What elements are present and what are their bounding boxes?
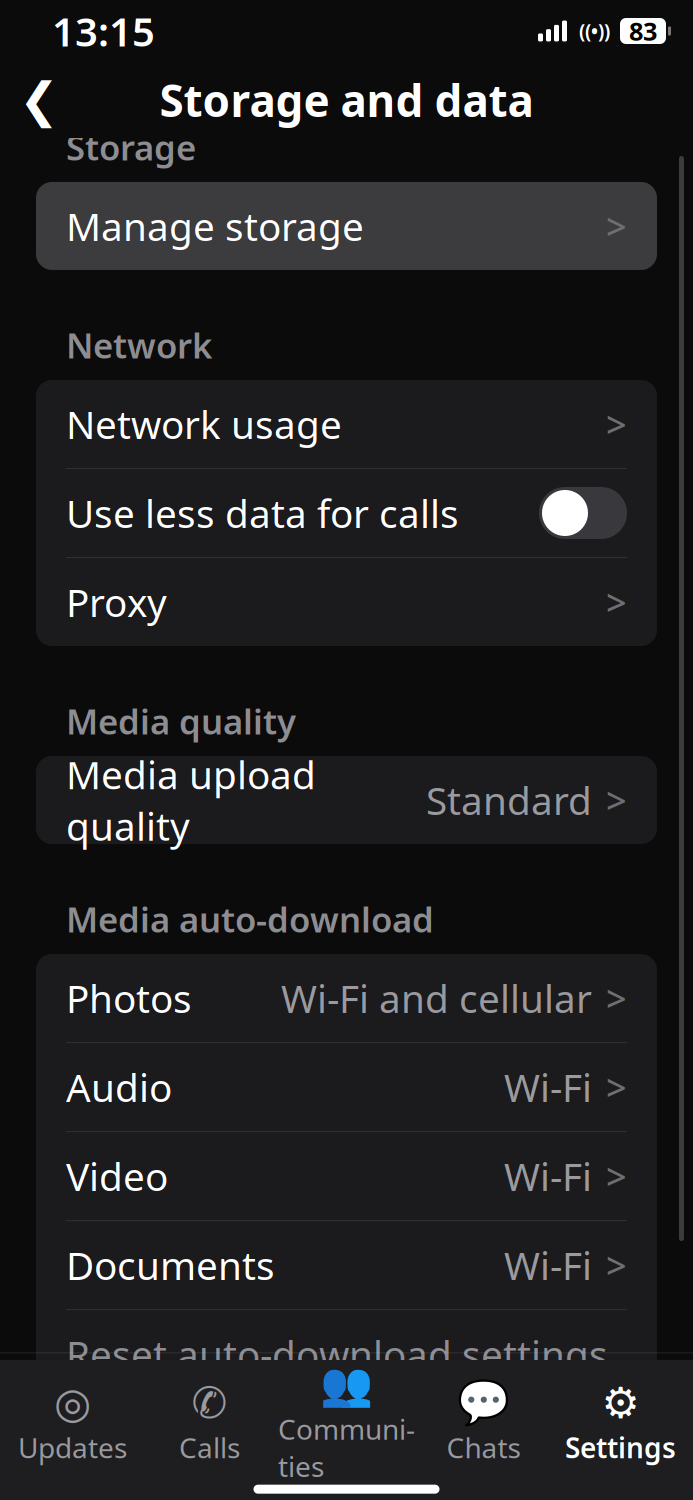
button[interactable]: 💬 — [415, 1372, 552, 1466]
staticText: Video — [66, 1150, 168, 1202]
button[interactable]: Back — [8, 69, 70, 131]
staticText: Wi-Fi — [504, 1061, 592, 1113]
button[interactable]: ◎ — [4, 1372, 141, 1466]
button[interactable]: ⚙ — [552, 1372, 689, 1466]
staticText: > — [606, 1063, 627, 1111]
staticText: Storage — [66, 124, 196, 170]
staticText: Reset auto-download settings — [66, 1328, 608, 1380]
staticText: Network usage — [66, 398, 342, 450]
button[interactable]: Documents — [36, 1221, 657, 1309]
button[interactable]: Audio — [36, 1043, 657, 1131]
staticText: Storage and data — [159, 71, 533, 129]
staticText: Audio — [66, 1061, 172, 1113]
staticText: Media auto-download — [66, 896, 434, 942]
staticText: > — [606, 400, 627, 448]
staticText: Use less data for calls — [66, 487, 459, 539]
staticText: 💬 — [457, 1378, 510, 1427]
staticText: Documents — [66, 1239, 275, 1291]
staticText: Settings — [565, 1429, 676, 1466]
staticText: Media quality — [66, 698, 296, 744]
staticText: Standard — [426, 774, 592, 826]
button[interactable]: Media upload quality — [36, 756, 657, 844]
staticText: Media upload quality — [66, 749, 316, 851]
staticText: > — [606, 578, 627, 626]
staticText: ❮ — [19, 73, 59, 127]
staticText: ◎ — [54, 1379, 91, 1427]
staticText: Wi-Fi and cellular — [281, 972, 592, 1024]
button[interactable]: Manage storage — [36, 182, 657, 270]
staticText: Manage storage — [66, 200, 364, 252]
staticText: Calls — [179, 1429, 240, 1466]
staticText: ((•)) — [579, 19, 610, 43]
staticText: > — [606, 1241, 627, 1289]
staticText: Updates — [18, 1429, 127, 1466]
staticText: > — [606, 1152, 627, 1200]
button[interactable]: Network usage — [36, 380, 657, 468]
staticText: ⚙ — [601, 1379, 639, 1427]
staticText: Chats — [446, 1429, 520, 1466]
staticText: Photos — [66, 972, 192, 1024]
button[interactable]: Proxy — [36, 558, 657, 646]
staticText: 83 — [629, 14, 657, 48]
button[interactable]: Use less data for calls — [36, 469, 657, 557]
staticText: 👥 — [320, 1360, 373, 1409]
staticText: > — [606, 202, 627, 250]
button[interactable]: 👥 — [278, 1353, 415, 1485]
staticText: > — [606, 974, 627, 1022]
staticText: Network — [66, 322, 212, 368]
staticText: ✆ — [191, 1379, 227, 1427]
staticText: Proxy — [66, 576, 167, 628]
button[interactable]: ✆ — [141, 1372, 278, 1466]
staticText: > — [606, 776, 627, 824]
staticText: Wi-Fi — [504, 1239, 592, 1291]
staticText: Wi-Fi — [504, 1150, 592, 1202]
staticText: Communities — [278, 1410, 415, 1485]
staticText: 13:15 — [52, 4, 155, 57]
button[interactable]: Photos — [36, 954, 657, 1042]
button[interactable]: Video — [36, 1132, 657, 1220]
button[interactable]: Reset auto-download settings — [36, 1310, 657, 1398]
